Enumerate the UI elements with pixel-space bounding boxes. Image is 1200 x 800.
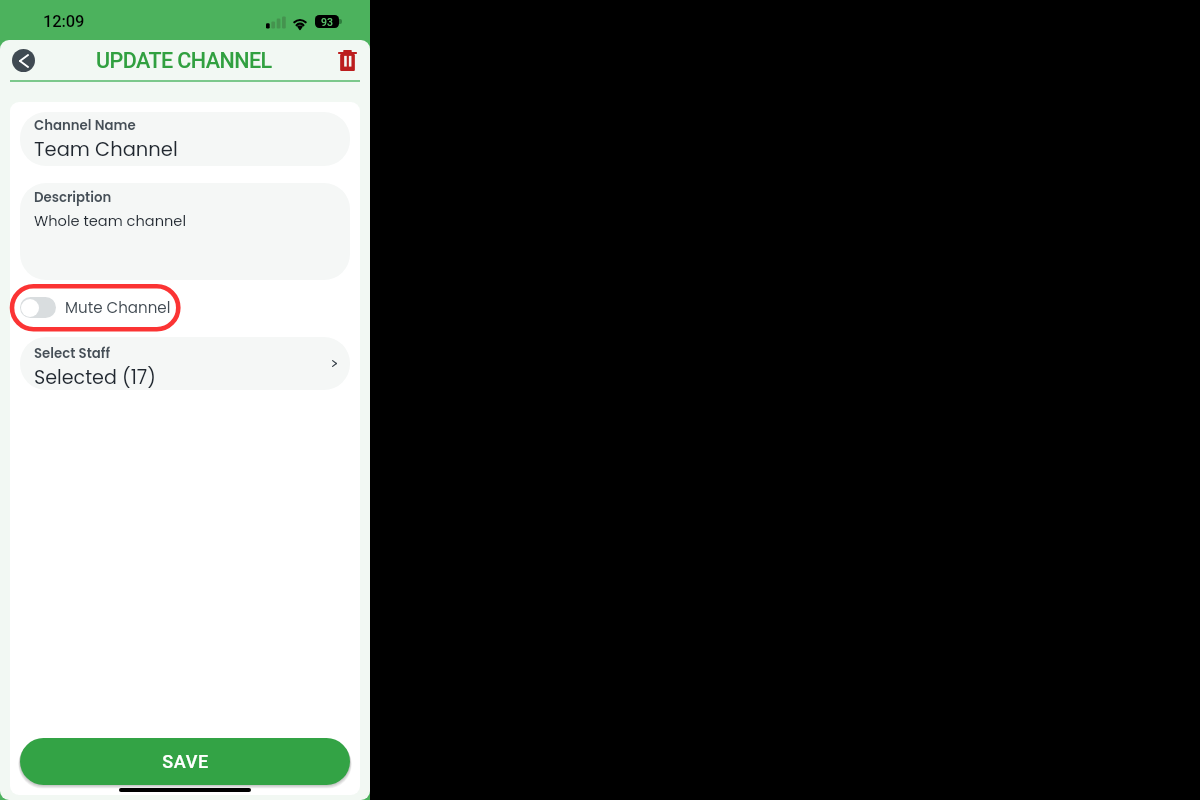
staticText: Whole team channel — [34, 211, 186, 231]
staticText: 12:09 — [43, 12, 85, 31]
button[interactable]: SAVE — [20, 738, 350, 785]
staticText: Description — [34, 188, 112, 207]
button[interactable]: Description — [20, 183, 350, 280]
staticText: Selected (17) — [34, 364, 156, 390]
staticText: Select Staff — [34, 344, 110, 363]
button[interactable]: Delete channel — [335, 48, 359, 72]
button[interactable]: Mute Channel — [20, 297, 171, 318]
staticText: 93 — [321, 16, 333, 28]
staticText: Mute Channel — [65, 297, 171, 318]
button[interactable]: Channel Name — [20, 112, 350, 166]
staticText: UPDATE CHANNEL — [96, 48, 272, 73]
staticText: Channel Name — [34, 116, 136, 135]
button[interactable]: Back — [12, 49, 35, 72]
staticText: Team Channel — [34, 136, 178, 163]
button[interactable]: Select Staff — [20, 337, 350, 390]
staticText: SAVE — [162, 751, 209, 772]
